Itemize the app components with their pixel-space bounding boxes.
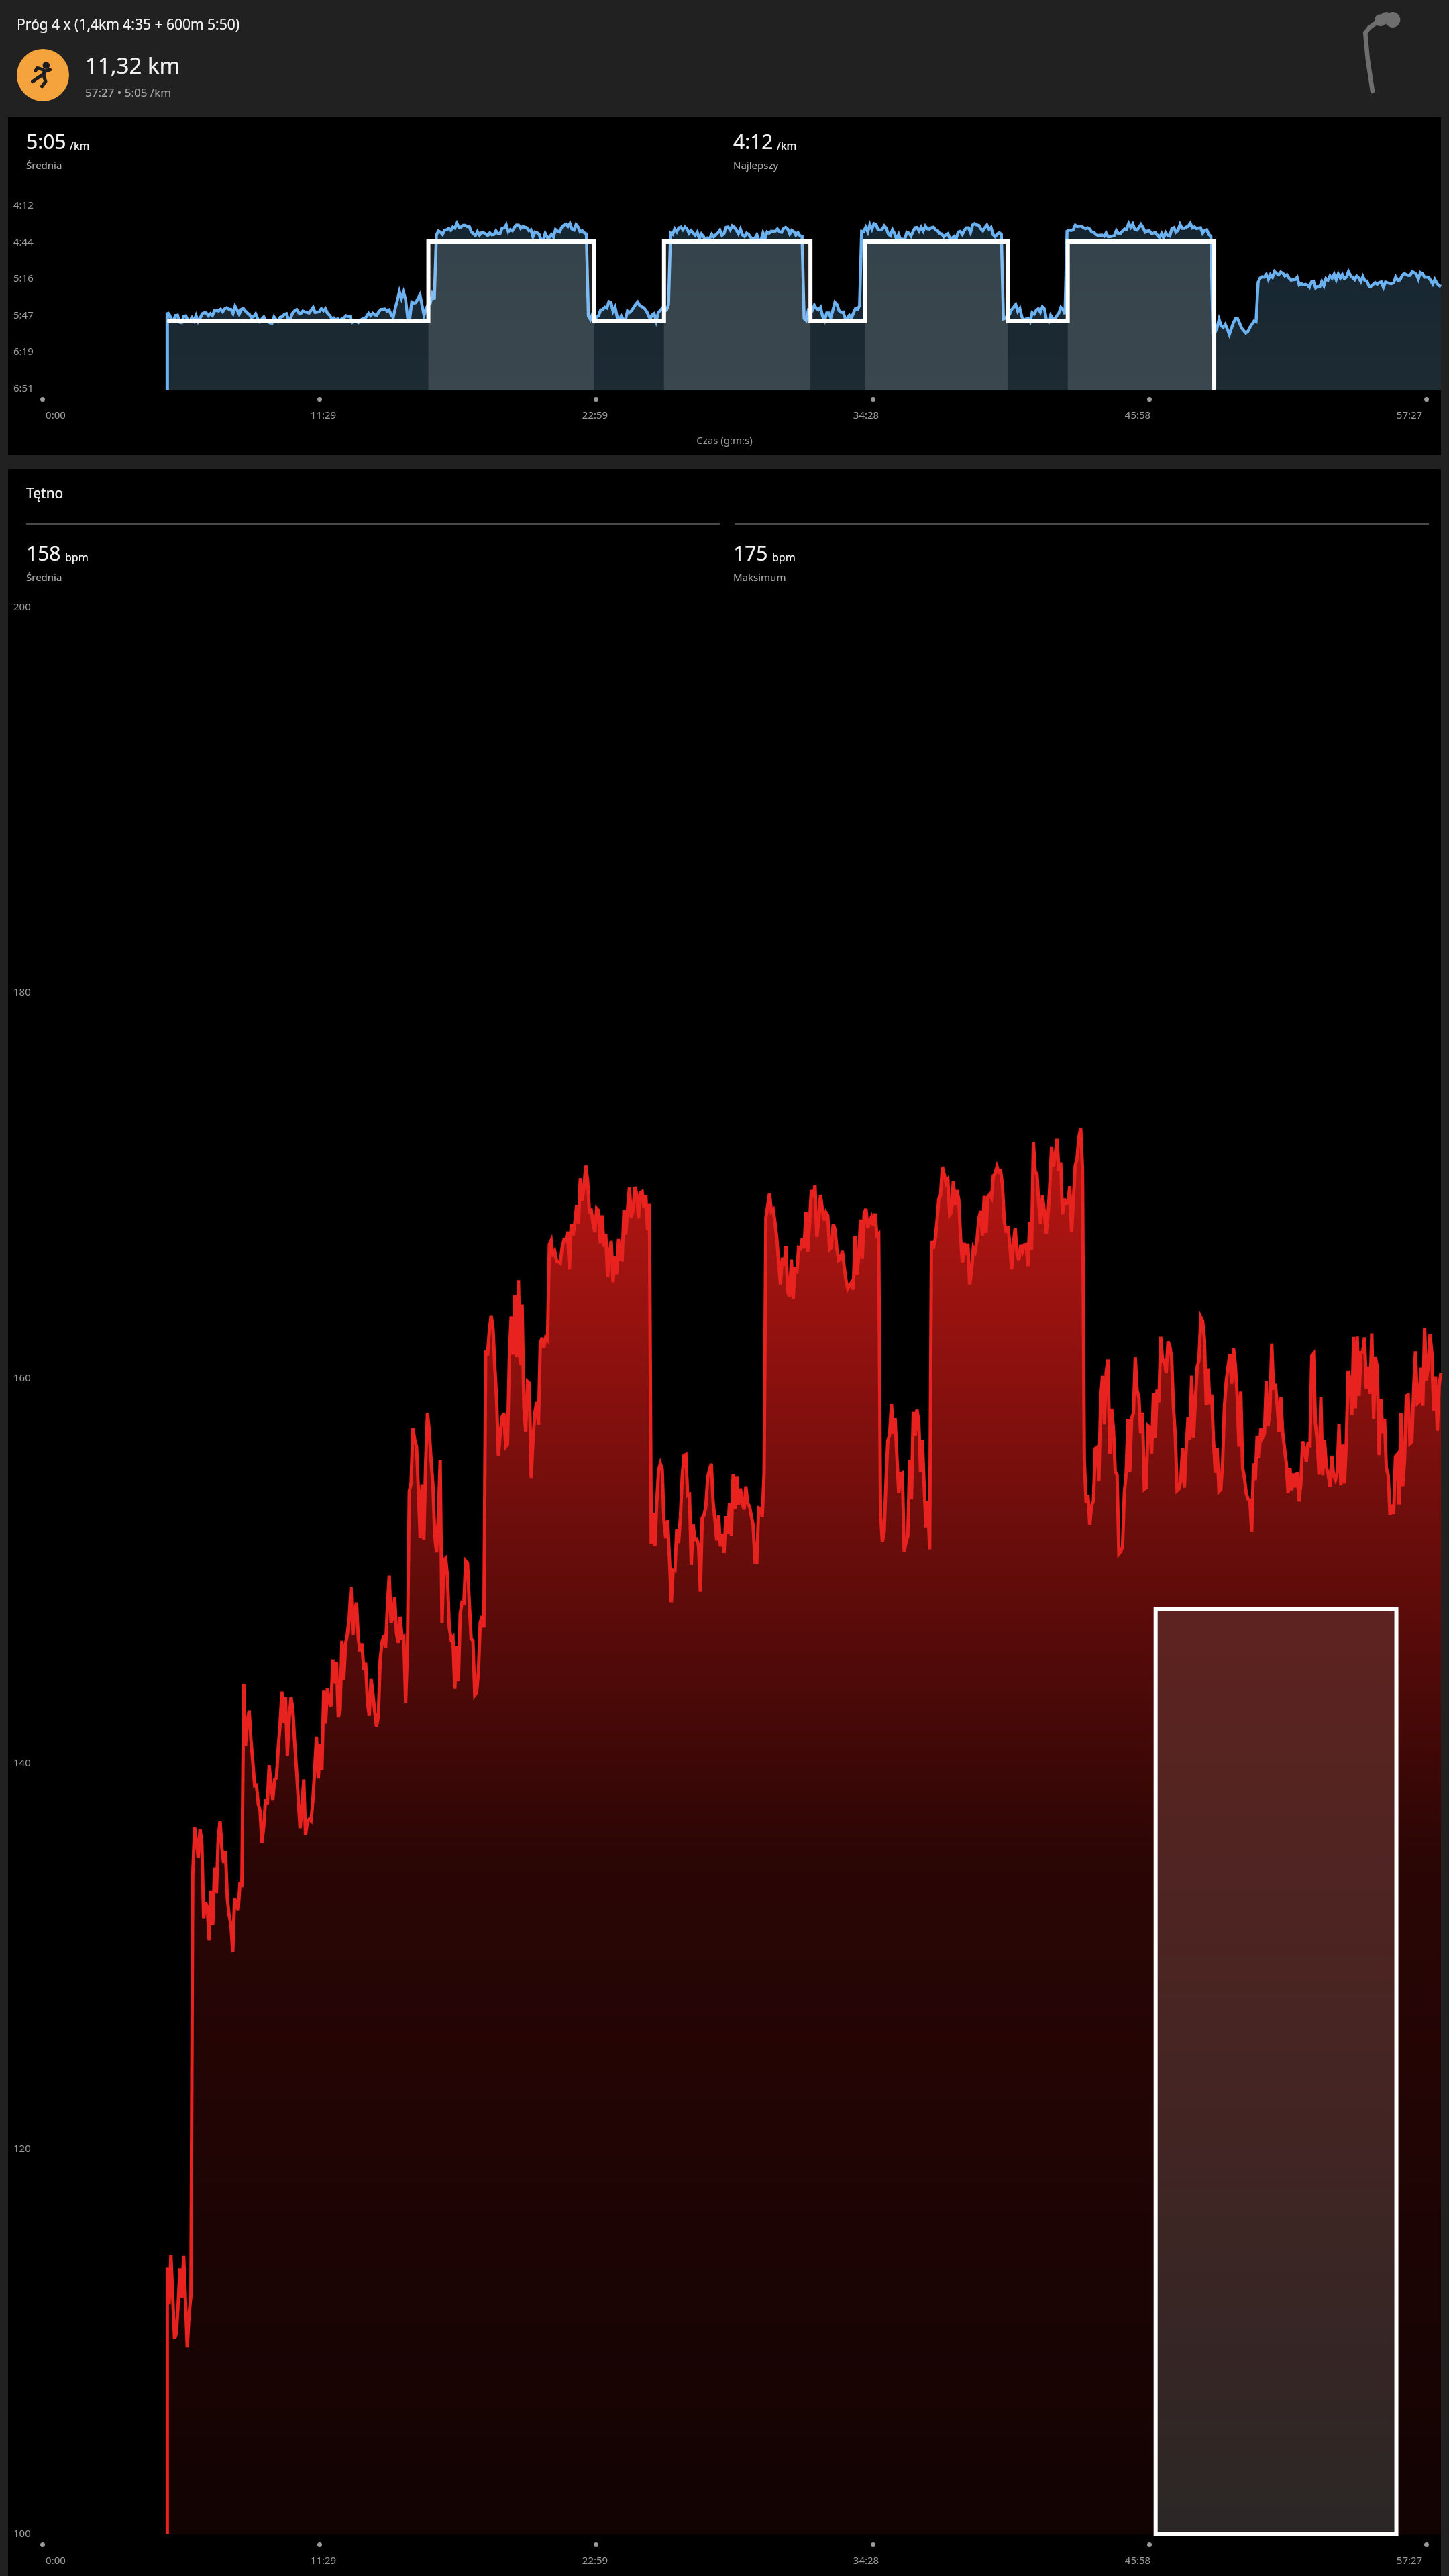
button[interactable]: 5:05	[8, 117, 1441, 455]
staticText: 160	[13, 1371, 31, 1384]
button[interactable]: Tętno	[8, 469, 1441, 2576]
staticText: 180	[13, 985, 31, 998]
staticText: Maksimum	[733, 570, 786, 584]
staticText: 57:27	[1390, 408, 1429, 421]
staticText: Próg 4 x (1,4km 4:35 + 600m 5:50)	[17, 15, 240, 34]
button[interactable]: Route map	[1348, 7, 1429, 94]
staticText: 34:28	[847, 408, 885, 421]
staticText: 5:47	[13, 308, 34, 321]
staticText: /km	[777, 138, 797, 153]
staticText: 200	[13, 600, 31, 613]
staticText: 57:27	[1390, 2553, 1429, 2567]
staticText: 4:44	[13, 235, 34, 248]
button[interactable]: Running activity	[17, 49, 69, 101]
staticText: 100	[13, 2526, 31, 2540]
staticText: 34:28	[847, 2553, 885, 2567]
staticText: bpm	[65, 550, 89, 565]
staticText: 45:58	[1118, 408, 1157, 421]
staticText: Średnia	[26, 158, 62, 172]
staticText: 11:29	[304, 2553, 343, 2567]
staticText: 45:58	[1118, 2553, 1157, 2567]
staticText: Czas (g:m:s)	[8, 433, 1441, 447]
staticText: Najlepszy	[733, 158, 779, 172]
staticText: 57:27 • 5:05 /km	[85, 85, 172, 100]
staticText: 6:19	[13, 344, 34, 358]
staticText: Tętno	[26, 484, 64, 503]
staticText: 5:05	[26, 127, 66, 155]
staticText: 4:12	[733, 127, 773, 155]
staticText: 0:00	[40, 2553, 71, 2567]
staticText: 175	[733, 539, 768, 567]
staticText: Średnia	[26, 570, 62, 584]
staticText: 6:51	[13, 381, 34, 394]
staticText: 120	[13, 2141, 31, 2155]
staticText: 158	[26, 539, 61, 567]
staticText: 5:16	[13, 271, 34, 284]
staticText: 22:59	[576, 408, 614, 421]
staticText: 22:59	[576, 2553, 614, 2567]
staticText: 0:00	[40, 408, 71, 421]
staticText: 140	[13, 1756, 31, 1769]
staticText: 11,32 km	[85, 50, 180, 80]
staticText: /km	[70, 138, 90, 153]
staticText: 4:12	[13, 198, 34, 211]
staticText: 11:29	[304, 408, 343, 421]
staticText: bpm	[772, 550, 796, 565]
